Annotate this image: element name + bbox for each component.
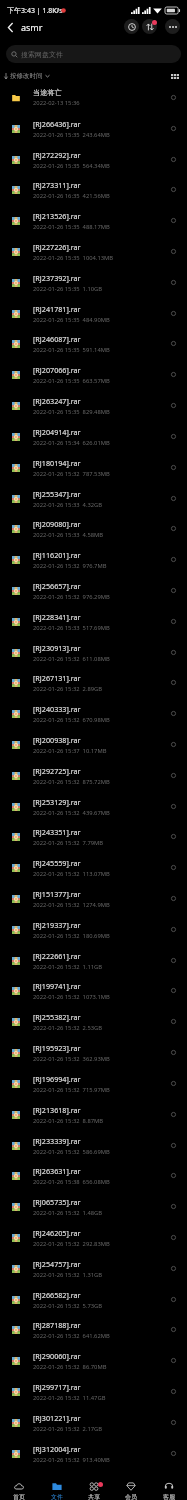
button[interactable]: [RJ204914].rar (0, 421, 187, 452)
button[interactable]: Select (167, 1385, 180, 1398)
button[interactable]: [RJ237392].rar (0, 267, 187, 298)
button[interactable]: Select (167, 153, 180, 166)
button[interactable]: Transfers (142, 19, 157, 34)
button[interactable]: [RJ246087].rar (0, 328, 187, 359)
button[interactable]: Select (167, 584, 180, 597)
button[interactable]: Select (167, 769, 180, 782)
button[interactable]: Select (167, 307, 180, 320)
button[interactable]: Select (167, 1200, 180, 1213)
button[interactable]: [RJ243351].rar (0, 821, 187, 852)
button[interactable]: Select (167, 954, 180, 967)
button[interactable]: [RJ195923].rar (0, 1037, 187, 1068)
button[interactable]: [RJ301221].rar (0, 1407, 187, 1438)
button[interactable]: Select (167, 1354, 180, 1367)
button[interactable]: Select (167, 738, 180, 751)
button[interactable]: Select (167, 522, 180, 535)
button[interactable]: [RJ255382].rar (0, 1006, 187, 1037)
button[interactable]: Select (167, 214, 180, 227)
button[interactable]: Select (167, 1015, 180, 1028)
button[interactable]: 会员 (112, 1481, 149, 1500)
button[interactable]: [RJ263631].rar (0, 1160, 187, 1191)
button[interactable]: Select (167, 1416, 180, 1429)
button[interactable]: [RJ209080].rar (0, 513, 187, 544)
button[interactable]: [RJ199741].rar (0, 975, 187, 1006)
button[interactable]: [RJ213618].rar (0, 1099, 187, 1130)
button[interactable]: History (124, 19, 139, 34)
button[interactable]: [RJ246205].rar (0, 1222, 187, 1253)
button[interactable]: [RJ292725].rar (0, 760, 187, 791)
button[interactable]: Select (167, 676, 180, 689)
button[interactable]: [RJ263247].rar (0, 390, 187, 421)
button[interactable]: Select (167, 1077, 180, 1090)
button[interactable]: Select (167, 646, 180, 659)
button[interactable]: Back (2, 19, 18, 35)
button[interactable]: Select (167, 337, 180, 350)
button[interactable]: [RJ267131].rar (0, 667, 187, 698)
button[interactable]: Select (167, 553, 180, 566)
button[interactable]: Select (167, 368, 180, 381)
button[interactable]: [RJ266582].rar (0, 1284, 187, 1315)
button[interactable]: More (165, 19, 180, 34)
button[interactable]: 共享 (75, 1481, 112, 1500)
button[interactable]: [RJ219337].rar (0, 914, 187, 945)
button[interactable]: [RJ240333].rar (0, 698, 187, 729)
button[interactable]: 首页 (0, 1481, 37, 1500)
button[interactable]: [RJ233339].rar (0, 1130, 187, 1161)
button[interactable]: 文件 (38, 1481, 75, 1500)
button[interactable]: Select (167, 276, 180, 289)
button[interactable]: [RJ180194].rar (0, 452, 187, 483)
button[interactable]: [RJ222661].rar (0, 945, 187, 976)
button[interactable]: Select (167, 430, 180, 443)
button[interactable]: [RJ213526].rar (0, 205, 187, 236)
button[interactable]: Select (167, 1169, 180, 1182)
button[interactable]: [RJ196994].rar (0, 1068, 187, 1099)
button[interactable]: [RJ230913].rar (0, 637, 187, 668)
button[interactable]: Select (167, 1046, 180, 1059)
button[interactable]: Select (167, 1262, 180, 1275)
button[interactable]: [RJ241781].rar (0, 298, 187, 329)
button[interactable]: Select (167, 830, 180, 843)
button[interactable]: Select (167, 399, 180, 412)
button[interactable]: Select (167, 183, 180, 196)
button[interactable]: 客服 (150, 1481, 187, 1500)
button[interactable]: [RJ228341].rar (0, 606, 187, 637)
button[interactable]: [RJ065735].rar (0, 1191, 187, 1222)
button[interactable]: Select (167, 892, 180, 905)
button[interactable]: Select (167, 923, 180, 936)
button[interactable]: [RJ245559].rar (0, 852, 187, 883)
button[interactable]: Select (167, 861, 180, 874)
button[interactable]: [RJ255347].rar (0, 483, 187, 514)
button[interactable]: 当途将亡 (0, 82, 187, 113)
button[interactable]: Select (167, 615, 180, 628)
button[interactable]: Select (167, 91, 180, 104)
button[interactable]: [RJ290060].rar (0, 1345, 187, 1376)
button[interactable]: [RJ227226].rar (0, 236, 187, 267)
button[interactable]: Select (167, 1139, 180, 1152)
button[interactable]: [RJ287188].rar (0, 1314, 187, 1345)
button[interactable]: Select (167, 245, 180, 258)
button[interactable]: [RJ266436].rar (0, 113, 187, 144)
button[interactable]: Select (167, 122, 180, 135)
button[interactable]: 搜索网盘文件 (6, 45, 181, 63)
button[interactable]: [RJ116201].rar (0, 544, 187, 575)
button[interactable]: Select (167, 1293, 180, 1306)
button[interactable]: Select (167, 1231, 180, 1244)
button[interactable]: Select (167, 1108, 180, 1121)
button[interactable]: Select (167, 707, 180, 720)
button[interactable]: Select (167, 984, 180, 997)
button[interactable]: Select (167, 492, 180, 505)
button[interactable]: [RJ272292].rar (0, 144, 187, 175)
button[interactable]: Select (167, 1323, 180, 1336)
button[interactable]: [RJ207066].rar (0, 359, 187, 390)
button[interactable]: [RJ273311].rar (0, 174, 187, 205)
button[interactable]: Select (167, 1447, 180, 1460)
button[interactable]: [RJ253129].rar (0, 791, 187, 822)
button[interactable]: [RJ312004].rar (0, 1438, 187, 1469)
button[interactable]: [RJ299717].rar (0, 1376, 187, 1407)
button[interactable]: Select (167, 800, 180, 813)
button[interactable]: [RJ256657].rar (0, 575, 187, 606)
button[interactable]: Select (167, 461, 180, 474)
button[interactable]: [RJ254757].rar (0, 1253, 187, 1284)
button[interactable]: [RJ200938].rar (0, 729, 187, 760)
button[interactable]: 按修改时间 (4, 72, 50, 80)
